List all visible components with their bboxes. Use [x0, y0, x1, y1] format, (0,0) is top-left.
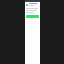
button[interactable]: [26, 15, 39, 18]
other: App icon: [26, 4, 28, 6]
button[interactable]: App icon: [26, 3, 39, 6]
